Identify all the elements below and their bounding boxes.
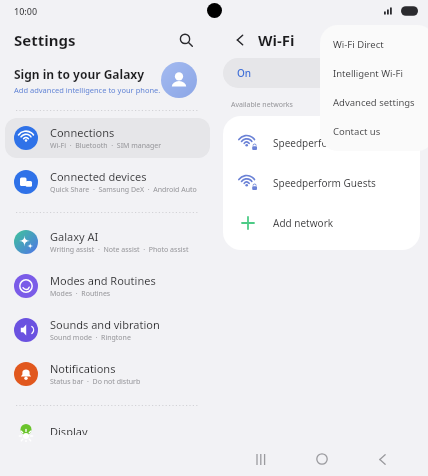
button[interactable]: Speedperform Guests [223,163,420,203]
button[interactable]: Connections [5,118,210,158]
button[interactable]: Modes and Routines [5,266,210,306]
staticText: Sign in to your Galaxy [14,66,145,82]
button[interactable]: Connected devices [5,162,210,202]
button[interactable]: Advanced settings [320,88,428,117]
staticText: On [237,66,252,80]
staticText: Modes · Routines [50,289,111,299]
staticText: Wi-Fi · Bluetooth · SIM manager [50,141,162,151]
staticText: Galaxy AI [50,229,99,244]
staticText: Sound mode · Ringtone [50,333,131,343]
staticText: Notifications [50,361,116,376]
staticText: Advanced settings [333,96,415,109]
button[interactable]: On [223,58,420,88]
button[interactable]: Add network [223,203,420,243]
staticText: Quick Share · Samsung DeX · Android Auto [50,185,197,195]
staticText: Contact us [333,125,381,138]
staticText: Sounds and vibration [50,317,160,332]
staticText: Wi-Fi [258,30,295,50]
button[interactable]: Search [173,27,199,53]
button[interactable]: Home [308,445,336,473]
button[interactable]: Speedperform [223,123,420,163]
staticText: Speedperform [273,136,341,150]
staticText: Connected devices [50,169,147,184]
staticText: Wi-Fi Direct [333,38,384,51]
button[interactable]: Intelligent Wi-Fi [320,59,428,88]
button[interactable]: Wi-Fi Direct [320,30,428,59]
button[interactable]: Sign in to your Galaxy [0,58,215,102]
button[interactable]: Galaxy AI [5,222,210,262]
button[interactable]: Back [368,445,396,473]
staticText: Settings [14,30,76,50]
button[interactable]: Display [5,417,210,442]
staticText: Add network [273,216,334,230]
staticText: Modes and Routines [50,273,156,288]
button[interactable]: Recents [247,445,275,473]
staticText: Speedperform Guests [273,176,376,190]
button[interactable]: Back [229,29,251,51]
button[interactable]: Sounds and vibration [5,310,210,350]
staticText: Available networks [231,100,293,110]
staticText: Writing assist · Note assist · Photo ass… [50,245,189,255]
staticText: Add advanced intelligence to your phone. [14,85,161,95]
staticText: 10:00 [14,5,38,17]
staticText: Status bar · Do not disturb [50,377,141,387]
staticText: Display [50,424,88,435]
staticText: Intelligent Wi-Fi [333,67,403,80]
button[interactable]: Contact us [320,117,428,146]
button[interactable]: Notifications [5,354,210,394]
staticText: Connections [50,125,115,140]
